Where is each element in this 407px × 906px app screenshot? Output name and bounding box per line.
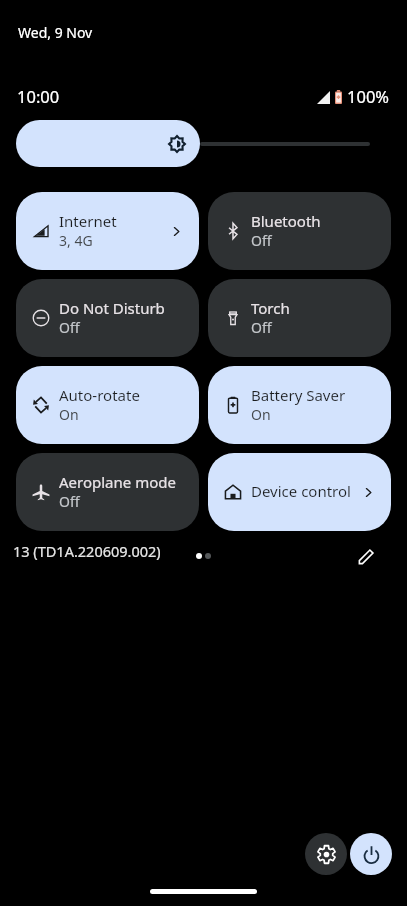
staticText: 3, 4G [59, 231, 93, 250]
button[interactable]: Do Not Disturb [16, 279, 199, 357]
staticText: Off [59, 318, 80, 337]
staticText: 13 (TD1A.220609.002) [13, 541, 161, 561]
staticText: Auto-rotate [59, 385, 140, 405]
button[interactable]: Edit tiles [350, 540, 382, 572]
staticText: Off [251, 231, 272, 250]
button[interactable]: Device controls [208, 453, 391, 531]
staticText: Aeroplane mode [59, 472, 176, 492]
button[interactable]: Settings [305, 833, 347, 875]
button[interactable]: Internet [16, 192, 199, 270]
button[interactable]: Aeroplane mode [16, 453, 199, 531]
staticText: Do Not Disturb [59, 298, 165, 318]
button[interactable]: Torch [208, 279, 391, 357]
staticText: Battery Saver [251, 385, 346, 405]
staticText: Off [59, 492, 80, 511]
button[interactable]: Brightness [16, 120, 200, 167]
staticText: Off [251, 318, 272, 337]
button[interactable]: Power [350, 833, 392, 875]
staticText: Internet [59, 211, 117, 231]
staticText: 10:00 [17, 85, 60, 107]
staticText: 100% [347, 85, 390, 107]
staticText: Wed, 9 Nov [18, 23, 93, 42]
staticText: On [59, 405, 79, 424]
staticText: Bluetooth [251, 211, 321, 231]
button[interactable]: Auto-rotate [16, 366, 199, 444]
button[interactable]: Battery Saver [208, 366, 391, 444]
staticText: Device controls [251, 481, 350, 501]
staticText: On [251, 405, 271, 424]
staticText: Torch [251, 298, 290, 318]
button[interactable]: Bluetooth [208, 192, 391, 270]
